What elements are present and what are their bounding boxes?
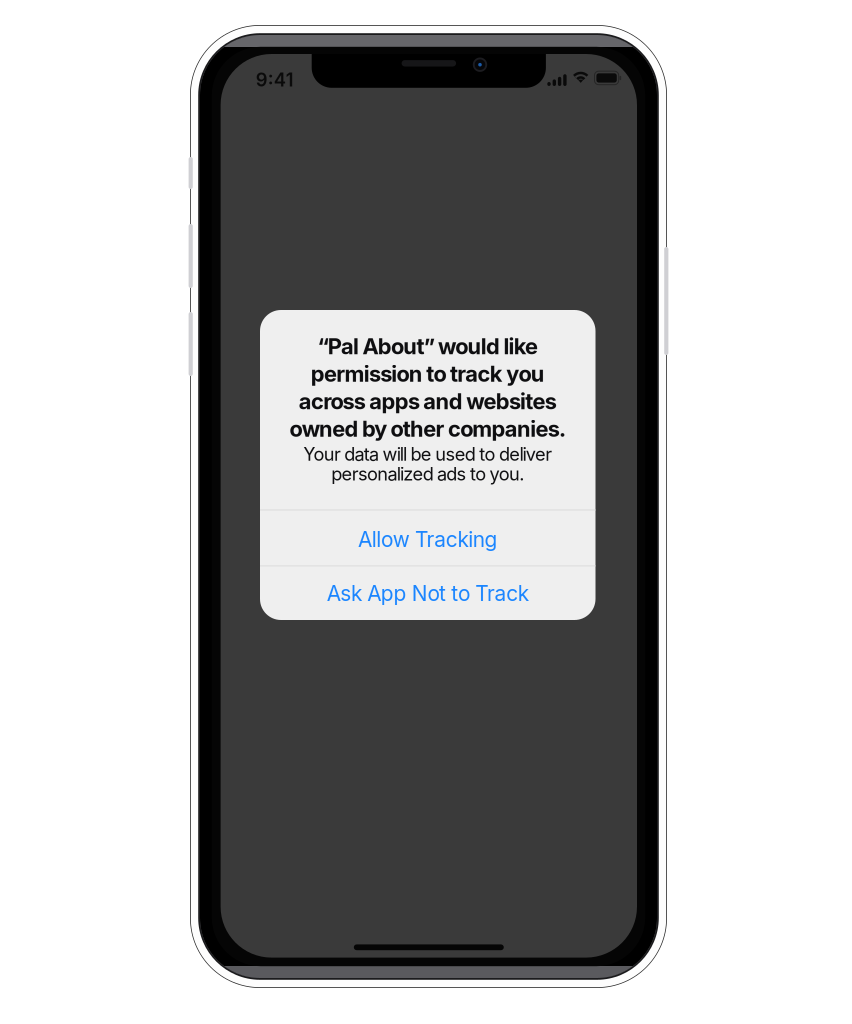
button[interactable]: Ask App Not to Track [260,566,595,620]
staticText: 9:41 [256,69,294,91]
button[interactable]: Allow Tracking [260,510,595,568]
staticText: permission to track you [311,361,545,387]
staticText: owned by other companies. [290,416,566,442]
staticText: Allow Tracking [358,527,497,552]
staticText: Ask App Not to Track [327,581,529,606]
staticText: across apps and websites [299,388,557,415]
staticText: personalized ads to you. [331,463,524,485]
staticText: Your data will be used to deliver [303,443,552,465]
staticText: “Pal About” would like [317,333,538,360]
